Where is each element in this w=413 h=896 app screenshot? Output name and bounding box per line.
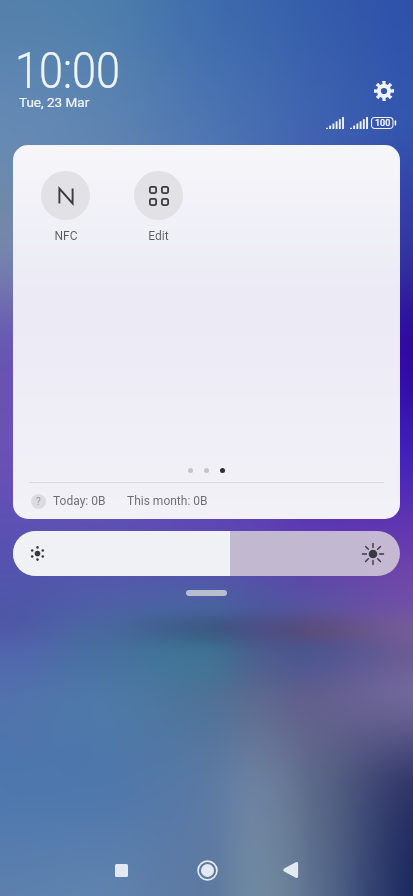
button[interactable]: Home [185,848,229,892]
button[interactable]: Settings [369,76,399,106]
staticText: This month: 0B [127,494,208,508]
button[interactable]: NFC [41,171,90,243]
staticText: NFC [54,229,78,243]
button[interactable]: Brightness [13,531,400,576]
staticText: 100 [375,118,391,129]
staticText: 10:00 [15,42,120,101]
staticText: ? [36,496,41,508]
staticText: Today: 0B [53,494,106,508]
button[interactable]: Back [268,848,312,892]
button[interactable]: Data usage help [31,494,46,509]
staticText: Tue, 23 Mar [19,94,90,110]
staticText: Edit [148,229,169,243]
button[interactable]: Recents [99,848,143,892]
button[interactable]: Edit [134,171,183,243]
